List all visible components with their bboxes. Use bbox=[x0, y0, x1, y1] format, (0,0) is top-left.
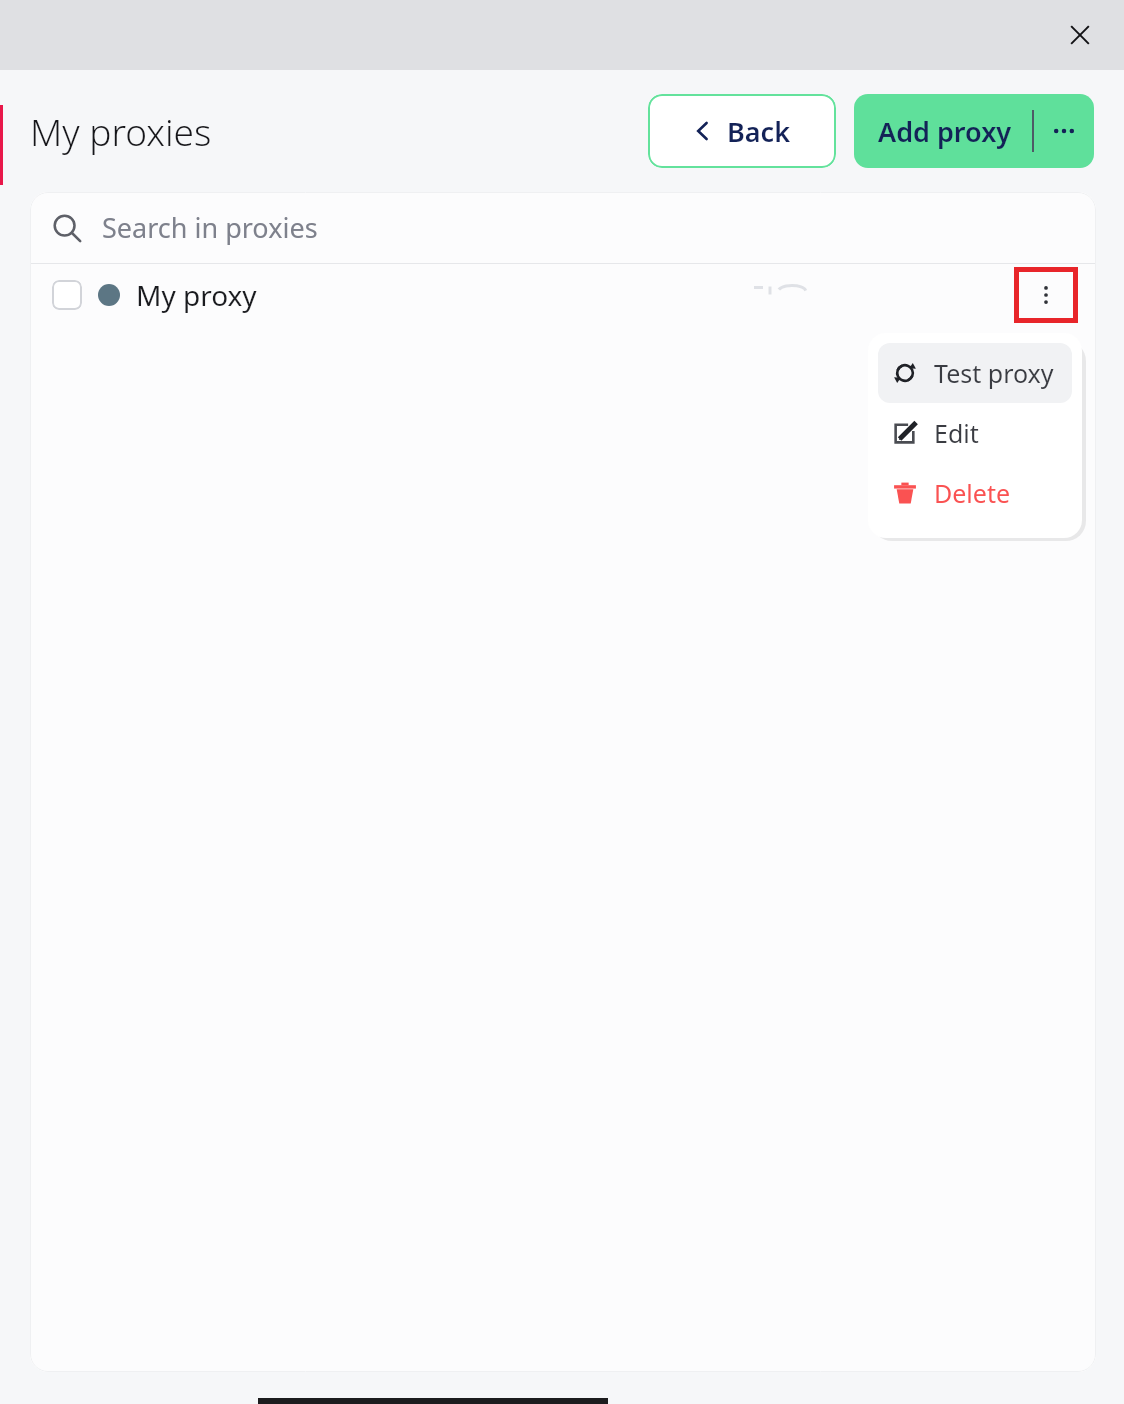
staticText: Test proxy bbox=[934, 356, 1054, 390]
button[interactable]: Add proxy bbox=[854, 94, 1032, 168]
staticText: Add proxy bbox=[878, 113, 1012, 150]
button[interactable]: Search in proxies bbox=[30, 192, 1096, 263]
button[interactable]: Delete bbox=[878, 463, 1072, 523]
button[interactable]: Back bbox=[648, 94, 836, 168]
button[interactable]: Test proxy bbox=[878, 343, 1072, 403]
staticText: Edit bbox=[934, 416, 979, 450]
button[interactable]: Select proxy bbox=[30, 264, 1096, 326]
staticText: My proxy bbox=[136, 276, 257, 314]
button[interactable]: Edit bbox=[878, 403, 1072, 463]
staticText: My proxies bbox=[30, 106, 212, 156]
button[interactable]: More options bbox=[1034, 94, 1094, 168]
staticText: Search in proxies bbox=[102, 209, 318, 246]
staticText: Back bbox=[727, 113, 791, 150]
button[interactable]: Close bbox=[1054, 9, 1106, 61]
staticText: Delete bbox=[934, 476, 1011, 510]
button[interactable]: Row menu bbox=[1014, 267, 1078, 323]
button[interactable]: Select proxy bbox=[52, 280, 82, 310]
